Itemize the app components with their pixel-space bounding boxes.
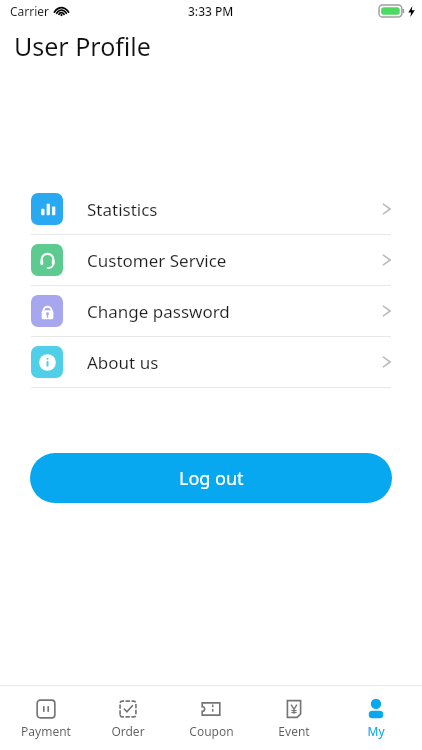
staticText: Event bbox=[278, 723, 310, 739]
staticText: Payment bbox=[21, 723, 71, 739]
button[interactable]: Event bbox=[257, 694, 331, 743]
button[interactable]: Change password bbox=[0, 286, 422, 336]
staticText: Order bbox=[111, 723, 145, 739]
button[interactable]: Payment bbox=[9, 694, 83, 743]
button[interactable]: Customer Service bbox=[0, 235, 422, 285]
button[interactable]: My bbox=[339, 694, 413, 743]
staticText: User Profile bbox=[14, 29, 151, 63]
staticText: Carrier bbox=[10, 3, 50, 19]
button[interactable]: Coupon bbox=[174, 694, 248, 743]
staticText: About us bbox=[87, 351, 159, 374]
staticText: Log out bbox=[179, 466, 244, 491]
staticText: 3:33 PM bbox=[188, 3, 234, 19]
staticText: Customer Service bbox=[87, 249, 227, 272]
staticText: Coupon bbox=[189, 723, 234, 739]
staticText: Statistics bbox=[87, 198, 158, 221]
button[interactable]: Statistics bbox=[0, 184, 422, 234]
button[interactable]: Order bbox=[91, 694, 165, 743]
staticText: Change password bbox=[87, 300, 230, 323]
button[interactable]: About us bbox=[0, 337, 422, 387]
button[interactable]: Log out bbox=[30, 453, 392, 503]
staticText: My bbox=[367, 723, 385, 739]
